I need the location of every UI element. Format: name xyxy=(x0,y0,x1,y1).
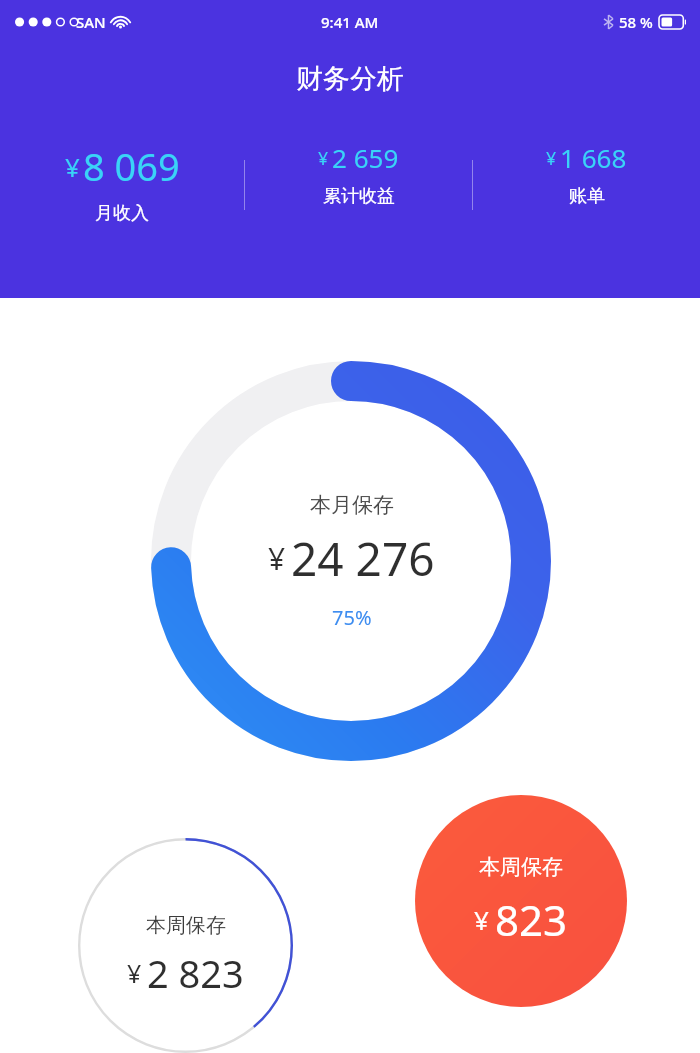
staticText: 累计收益 xyxy=(323,185,395,208)
button[interactable]: 本周保存 xyxy=(78,838,293,1053)
staticText: 2 823 xyxy=(147,947,244,999)
staticText: ¥ xyxy=(268,538,286,579)
staticText: SAN xyxy=(76,12,106,32)
button[interactable]: ¥ xyxy=(0,140,244,225)
staticText: 823 xyxy=(495,891,568,948)
staticText: 本周保存 xyxy=(146,913,226,938)
button[interactable]: ¥ xyxy=(245,140,472,208)
staticText: 9:41 AM xyxy=(321,12,379,32)
staticText: ¥ xyxy=(474,902,489,937)
staticText: 24 276 xyxy=(291,527,435,590)
staticText: 75% xyxy=(332,604,372,631)
staticText: 月收入 xyxy=(95,202,149,225)
button[interactable]: ¥ xyxy=(473,140,700,208)
staticText: 8 069 xyxy=(83,140,180,192)
staticText: 1 668 xyxy=(560,140,627,175)
staticText: 账单 xyxy=(569,185,605,208)
staticText: ¥ xyxy=(127,956,142,990)
staticText: ¥ xyxy=(318,146,329,170)
staticText: 本月保存 xyxy=(310,492,394,518)
staticText: 财务分析 xyxy=(296,62,404,96)
staticText: 本周保存 xyxy=(479,854,563,880)
button[interactable]: 本周保存 xyxy=(415,795,627,1007)
staticText: ¥ xyxy=(65,149,80,184)
staticText: 2 659 xyxy=(332,140,399,175)
staticText: ¥ xyxy=(546,146,557,170)
button[interactable]: 本月保存 xyxy=(151,361,551,761)
staticText: 58 % xyxy=(619,12,653,32)
